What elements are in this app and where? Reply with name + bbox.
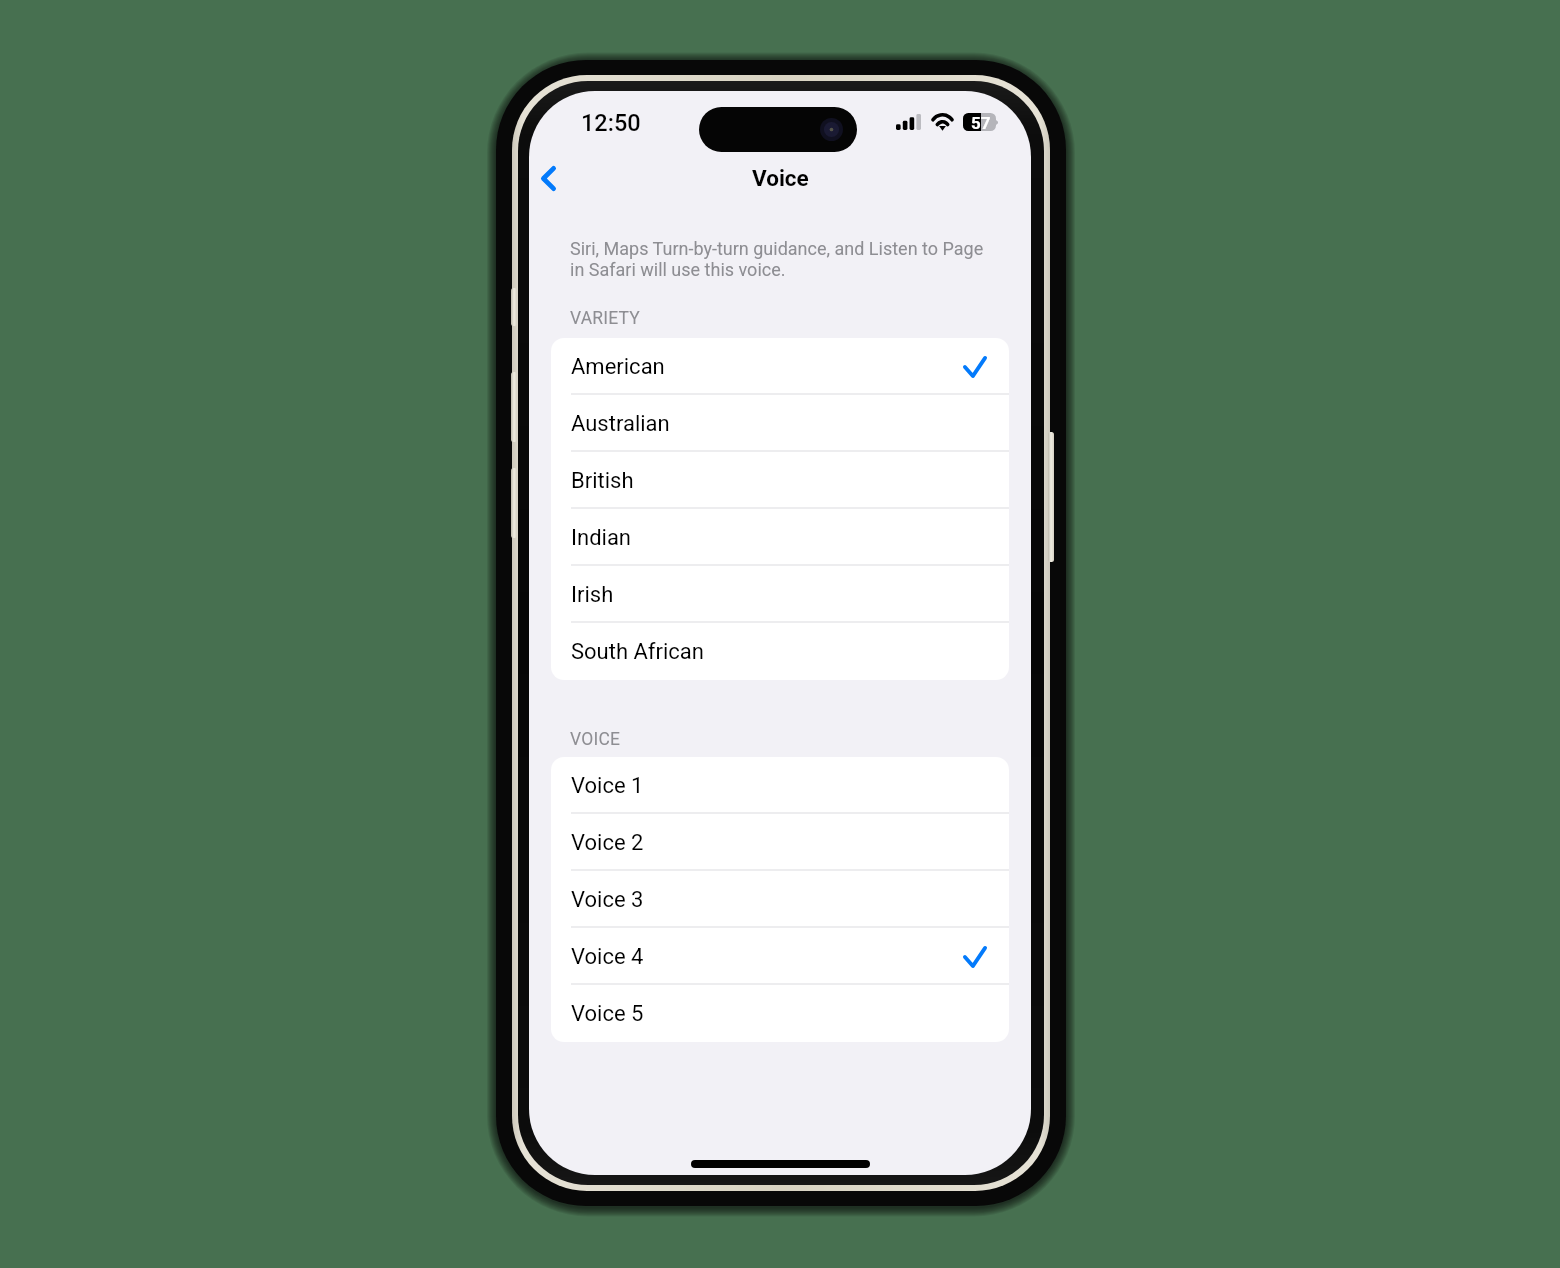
staticText: Voice 5	[571, 1001, 644, 1027]
other: Selected	[963, 356, 987, 378]
staticText: Indian	[571, 525, 632, 551]
button[interactable]: Voice 2	[551, 814, 1009, 871]
button[interactable]: Voice 1	[551, 757, 1009, 814]
other: Battery 57 percent	[963, 113, 996, 131]
staticText: 12:50	[581, 109, 641, 137]
staticText: Voice 4	[571, 944, 644, 970]
staticText: Irish	[571, 582, 614, 608]
other: Wi-Fi	[931, 113, 954, 130]
button[interactable]: Indian	[551, 509, 1009, 566]
staticText: Siri, Maps Turn-by-turn guidance, and Li…	[570, 238, 994, 280]
other: Cellular signal	[896, 114, 921, 130]
staticText: South African	[571, 639, 704, 665]
staticText: 57	[971, 113, 991, 131]
staticText: VARIETY	[570, 308, 641, 329]
staticText: Australian	[571, 411, 670, 437]
button[interactable]: Back	[529, 153, 567, 203]
staticText: American	[571, 354, 665, 380]
button[interactable]: South African	[551, 623, 1009, 680]
staticText: Voice 2	[571, 830, 644, 856]
button[interactable]: Irish	[551, 566, 1009, 623]
button[interactable]: American	[551, 338, 1009, 395]
button[interactable]: Australian	[551, 395, 1009, 452]
staticText: Voice 3	[571, 887, 644, 913]
other: Selected	[963, 946, 987, 968]
staticText: Voice	[752, 165, 809, 191]
button[interactable]: Voice 5	[551, 985, 1009, 1042]
button[interactable]: Voice 3	[551, 871, 1009, 928]
button[interactable]: British	[551, 452, 1009, 509]
button[interactable]: Voice 4	[551, 928, 1009, 985]
staticText: British	[571, 468, 634, 494]
staticText: VOICE	[570, 729, 621, 750]
staticText: Voice 1	[571, 773, 644, 799]
